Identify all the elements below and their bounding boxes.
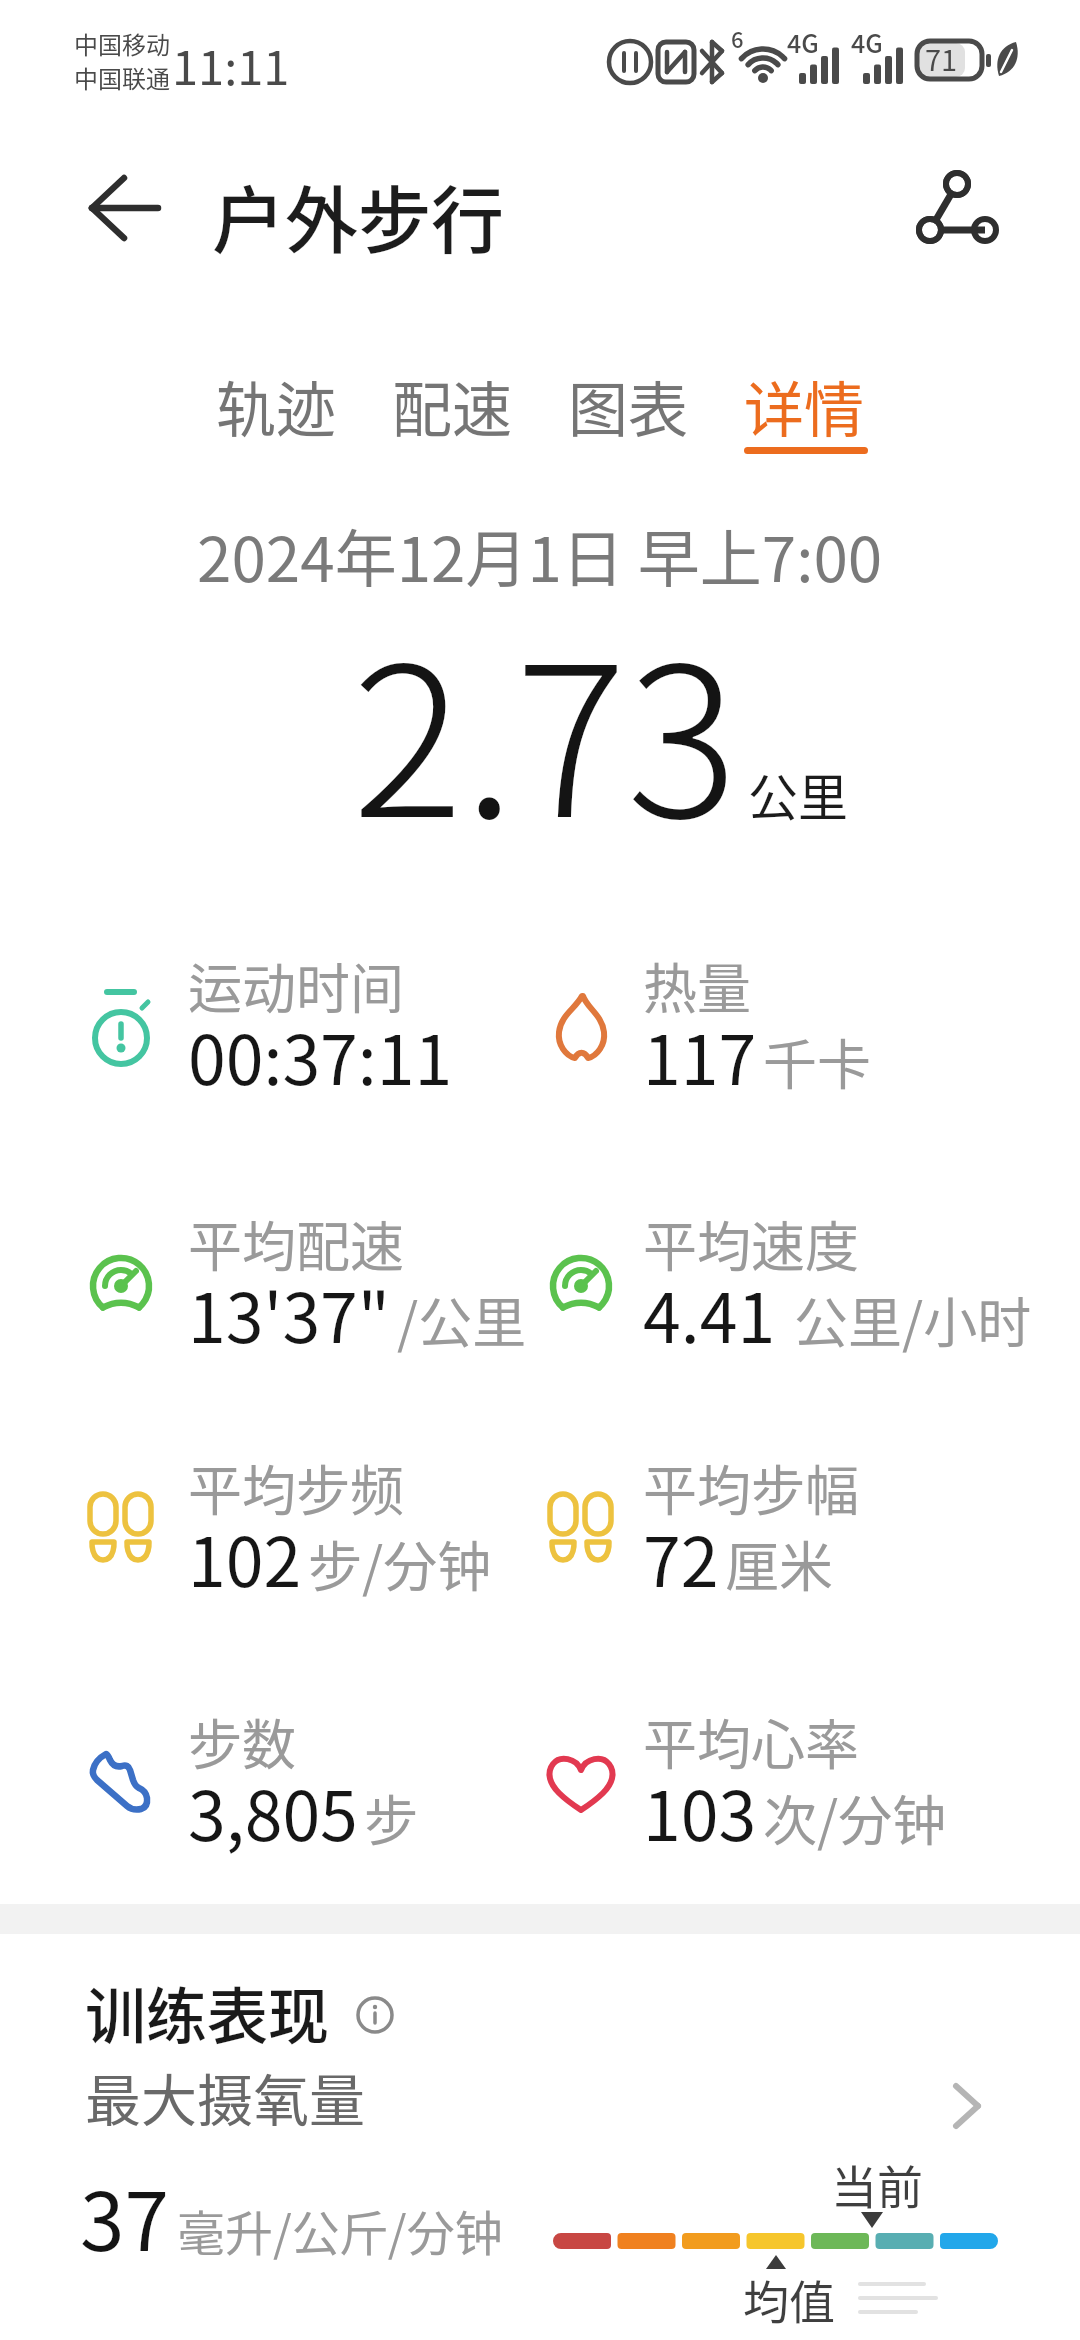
- staticText: 千卡: [763, 1022, 871, 1100]
- staticText: 平均速度: [643, 1204, 859, 1276]
- staticText: 平均心率: [643, 1702, 859, 1774]
- staticText: 厘米: [725, 1524, 833, 1602]
- staticText: 4G: [851, 24, 883, 60]
- staticText: /公里: [397, 1280, 527, 1358]
- staticText: 步/分钟: [308, 1524, 492, 1602]
- staticText: 6: [731, 22, 744, 54]
- staticText: 公里: [748, 758, 848, 830]
- staticText: 2.73: [352, 576, 738, 877]
- staticText: 步: [364, 1778, 418, 1856]
- staticText: 103: [643, 1762, 757, 1860]
- button[interactable]: 轨迹: [216, 362, 336, 438]
- staticText: 最大摄氧量: [85, 2056, 365, 2137]
- staticText: 平均步幅: [643, 1448, 859, 1520]
- staticText: 117: [643, 1006, 757, 1104]
- button[interactable]: 配速: [392, 362, 512, 438]
- button[interactable]: 图表: [568, 362, 688, 438]
- button[interactable]: 最大摄氧量: [0, 2054, 1080, 2140]
- staticText: 均值: [743, 2266, 835, 2333]
- staticText: 训练表现: [85, 1968, 330, 2056]
- staticText: 平均步频: [188, 1448, 404, 1520]
- staticText: 运动时间: [188, 946, 404, 1018]
- staticText: 4.41: [643, 1264, 776, 1362]
- staticText: 00:37:11: [188, 1006, 453, 1104]
- staticText: 中国联通: [74, 60, 170, 95]
- staticText: 37: [80, 2158, 169, 2274]
- staticText: 11:11: [172, 30, 290, 98]
- staticText: 户外步行: [212, 162, 504, 268]
- button[interactable]: [70, 160, 180, 256]
- staticText: 102: [188, 1508, 302, 1606]
- staticText: 步数: [188, 1702, 296, 1774]
- staticText: 热量: [643, 946, 751, 1018]
- staticText: 当前: [831, 2151, 923, 2218]
- staticText: 毫升/公斤/分钟: [177, 2195, 503, 2265]
- staticText: 平均配速: [188, 1204, 404, 1276]
- button[interactable]: [905, 160, 1015, 260]
- button[interactable]: 详情: [744, 362, 864, 438]
- staticText: 71: [925, 37, 958, 79]
- staticText: 中国移动: [74, 26, 170, 61]
- staticText: 3,805: [188, 1762, 358, 1860]
- staticText: 72: [643, 1508, 719, 1606]
- staticText: 13'37": [188, 1264, 391, 1362]
- staticText: 次/分钟: [763, 1778, 947, 1856]
- staticText: 公里/小时: [782, 1280, 1032, 1358]
- staticText: 4G: [787, 24, 819, 60]
- staticText: 2024年12月1日 早上7:00: [197, 510, 883, 600]
